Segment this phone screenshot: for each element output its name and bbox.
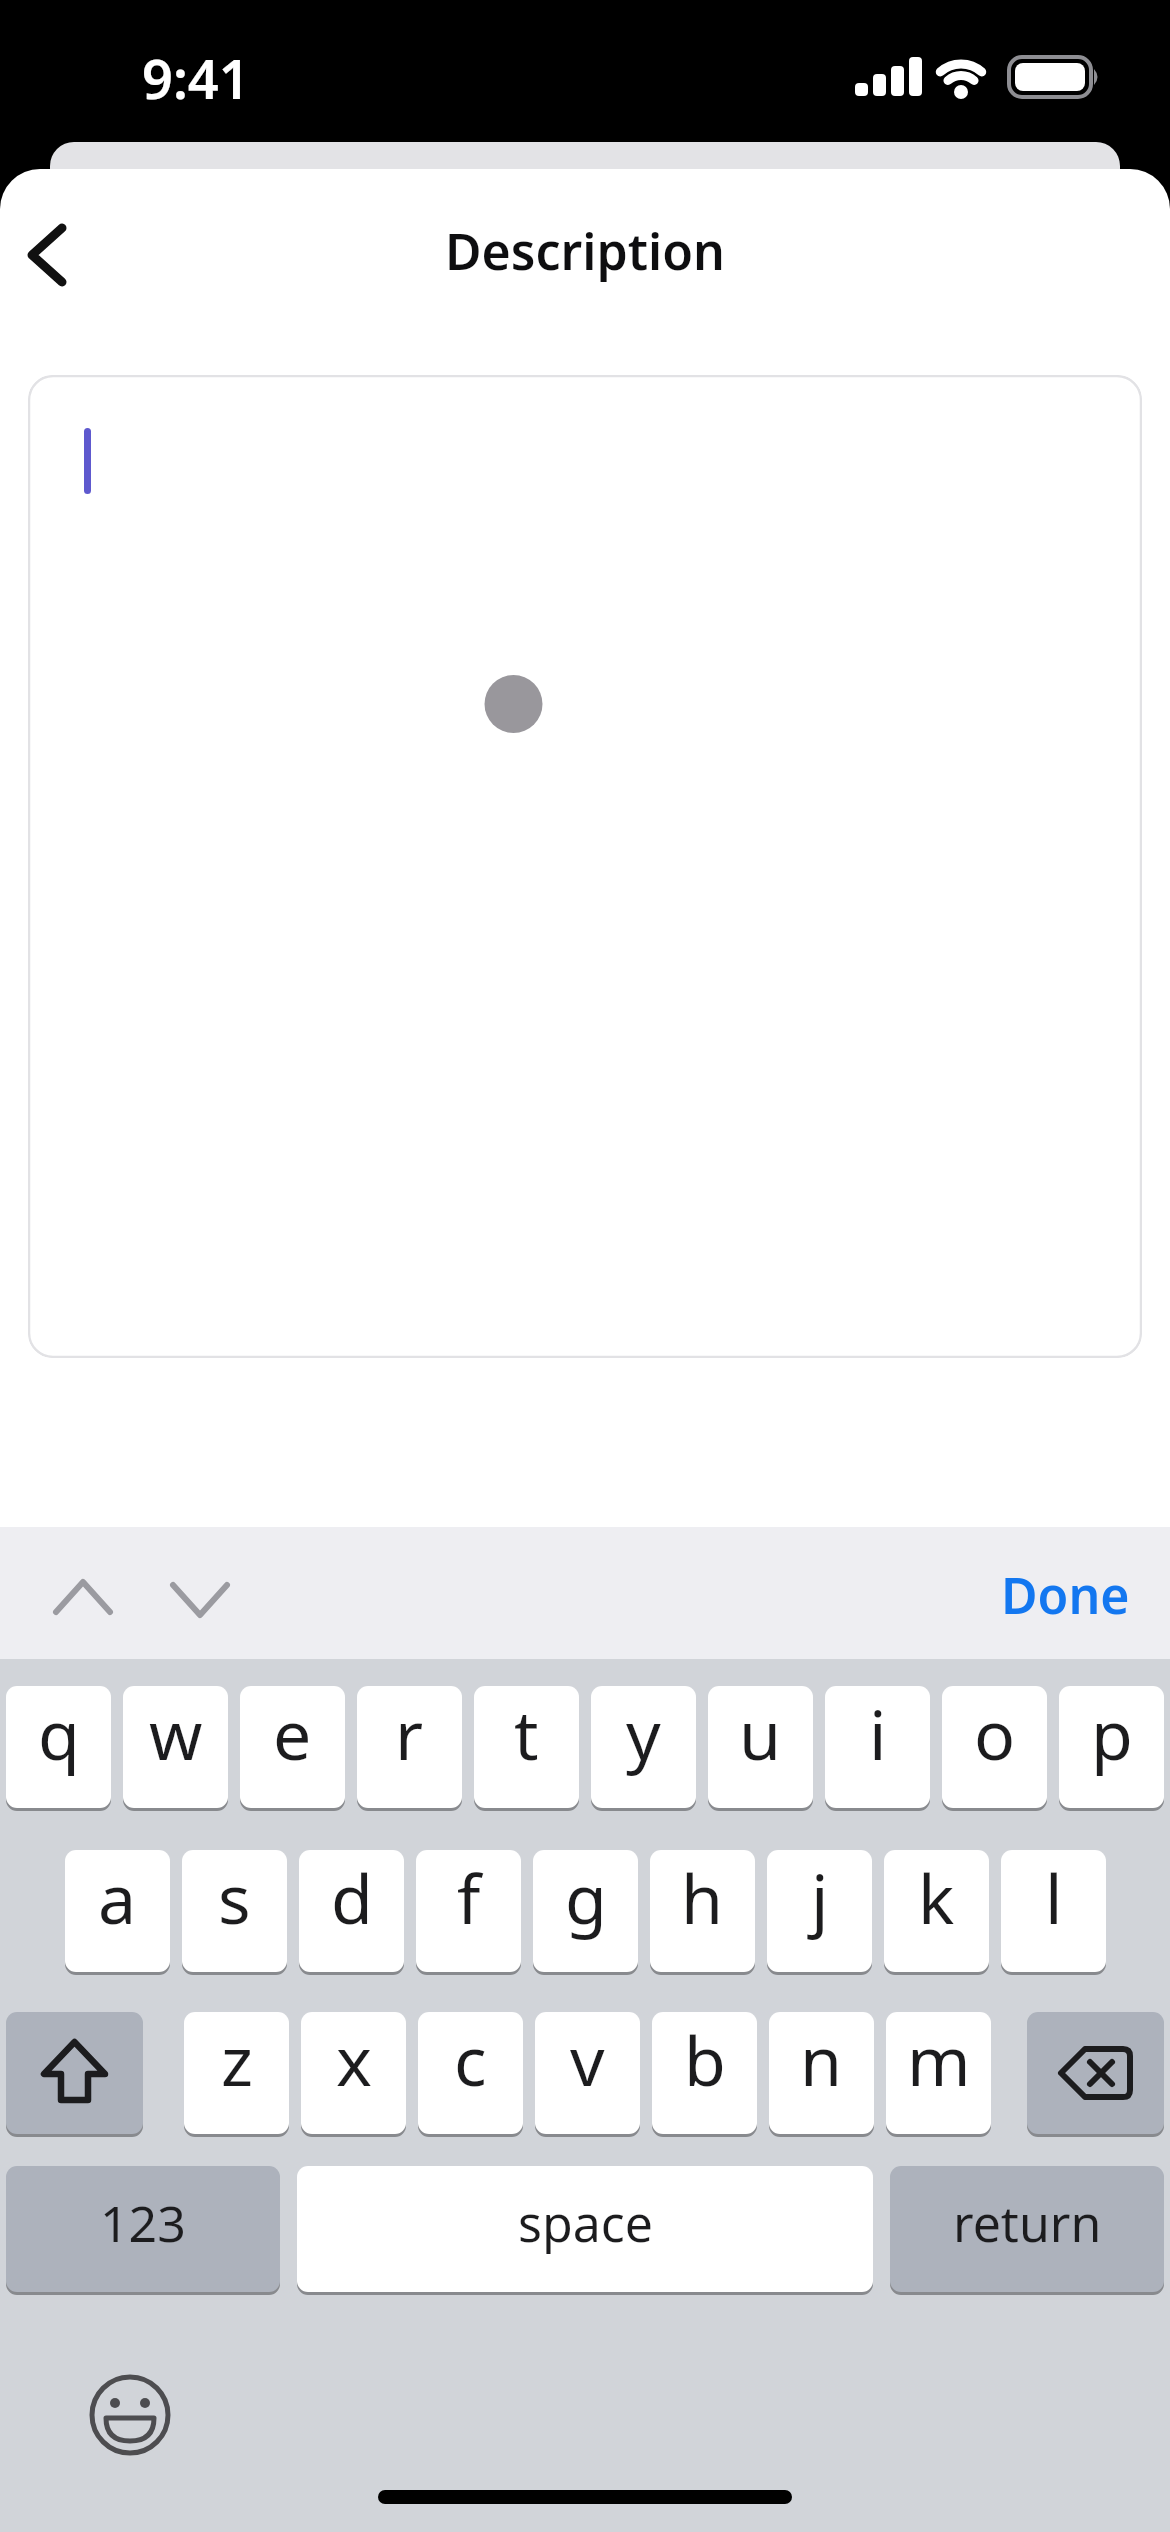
button[interactable] [10,210,100,300]
staticText: l [1045,1851,1063,1944]
button[interactable]: w [123,1686,228,1808]
staticText: r [395,1687,424,1780]
button[interactable]: h [650,1850,755,1972]
staticText: f [457,1851,481,1944]
staticText: 9:41 [142,41,250,115]
staticText: x [336,2013,372,2106]
staticText: j [811,1851,829,1944]
staticText: Description [445,217,725,285]
staticText: w [149,1687,203,1780]
staticText: e [273,1687,312,1780]
button[interactable]: n [769,2012,874,2134]
button[interactable]: 123 [6,2166,280,2292]
button[interactable]: e [240,1686,345,1808]
staticText: Done [1001,1561,1130,1629]
button[interactable] [80,2365,180,2465]
button[interactable] [40,1560,130,1636]
button[interactable]: p [1059,1686,1164,1808]
staticText: return [953,2189,1102,2257]
button[interactable]: x [301,2012,406,2134]
staticText: c [454,2013,487,2106]
button[interactable]: l [1001,1850,1106,1972]
staticText: t [514,1687,539,1780]
staticText: g [565,1851,607,1944]
staticText: h [681,1851,724,1944]
button[interactable]: y [591,1686,696,1808]
button[interactable]: k [884,1850,989,1972]
button[interactable]: g [533,1850,638,1972]
button[interactable]: f [416,1850,521,1972]
button[interactable] [28,375,1142,1358]
staticText: n [800,2013,843,2106]
button[interactable]: c [418,2012,523,2134]
button[interactable]: o [942,1686,1047,1808]
staticText: u [739,1687,782,1780]
button[interactable]: a [65,1850,170,1972]
button[interactable]: s [182,1850,287,1972]
button[interactable] [1027,2012,1164,2134]
staticText: d [331,1851,373,1944]
button[interactable]: q [6,1686,111,1808]
staticText: p [1091,1687,1133,1780]
staticText: v [570,2013,605,2106]
staticText: a [98,1851,137,1944]
button[interactable]: d [299,1850,404,1972]
button[interactable]: return [890,2166,1164,2292]
staticText: q [38,1687,80,1780]
staticText: i [869,1687,887,1780]
button[interactable]: j [767,1850,872,1972]
button[interactable]: t [474,1686,579,1808]
button[interactable]: Done [990,1557,1140,1633]
staticText: z [221,2013,253,2106]
staticText: k [918,1851,955,1944]
button[interactable]: b [652,2012,757,2134]
staticText: m [907,2013,971,2106]
button[interactable]: m [886,2012,991,2134]
staticText: s [218,1851,251,1944]
button[interactable]: space [297,2166,873,2292]
button[interactable]: v [535,2012,640,2134]
button[interactable]: u [708,1686,813,1808]
staticText: 123 [100,2189,186,2257]
button[interactable]: r [357,1686,462,1808]
button[interactable] [157,1560,247,1636]
button[interactable]: i [825,1686,930,1808]
staticText: b [684,2013,726,2106]
button[interactable]: z [184,2012,289,2134]
staticText: o [974,1687,1016,1780]
button[interactable] [6,2012,143,2134]
staticText: y [626,1687,661,1780]
staticText: space [518,2189,653,2257]
